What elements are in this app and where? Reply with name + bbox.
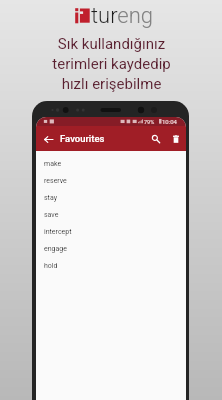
button[interactable]: stay — [36, 189, 186, 206]
staticText: reserve — [44, 177, 67, 185]
button[interactable]: hold — [36, 257, 186, 274]
button[interactable]: engage — [36, 240, 186, 257]
staticText: Sık kullandığınız terimleri kaydedip hız… — [52, 35, 171, 92]
button[interactable]: reserve — [36, 172, 186, 189]
button[interactable]: intercept — [36, 223, 186, 240]
staticText: save — [44, 211, 59, 219]
staticText: stay — [44, 194, 57, 202]
staticText: engage — [44, 245, 67, 253]
button[interactable]: save — [36, 206, 186, 223]
button[interactable]: Delete — [168, 131, 184, 147]
staticText: hold — [44, 262, 58, 270]
staticText: tureng — [91, 3, 154, 29]
staticText: intercept — [44, 228, 72, 236]
button[interactable]: Back — [41, 129, 55, 149]
button[interactable]: make — [36, 155, 186, 172]
staticText: 79% — [144, 119, 155, 125]
button[interactable]: Search — [148, 131, 164, 147]
staticText: 10:04 — [162, 118, 177, 125]
staticText: Favourites — [60, 133, 105, 144]
staticText: make — [44, 160, 62, 168]
